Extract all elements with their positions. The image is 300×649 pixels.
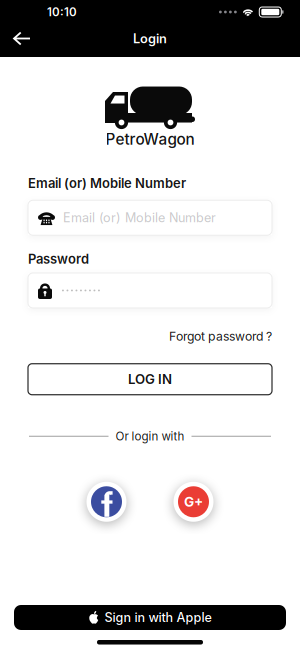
staticText: LOG IN [128,371,172,387]
button[interactable]: Login with Facebook [86,482,126,522]
button[interactable]: Sign in with Apple [14,605,286,630]
button[interactable]: Back [0,24,42,52]
staticText: Sign in with Apple [104,610,211,625]
staticText: Email (or) Mobile Number [63,210,216,225]
staticText: Password [28,251,89,267]
button[interactable]: Forgot password ? [169,329,272,344]
staticText: Forgot password ? [169,329,272,344]
button[interactable]: Email (or) Mobile Number [28,200,272,235]
button[interactable]: Password [28,273,272,308]
staticText: Or login with [115,429,184,443]
button[interactable]: LOG IN [28,364,272,395]
staticText: 10:10 [47,5,77,19]
button[interactable]: Login with Google [173,482,213,522]
staticText: G+ [184,493,203,510]
staticText: PetroWagon [105,130,194,148]
staticText: Login [133,31,167,46]
staticText: Email (or) Mobile Number [28,175,186,191]
